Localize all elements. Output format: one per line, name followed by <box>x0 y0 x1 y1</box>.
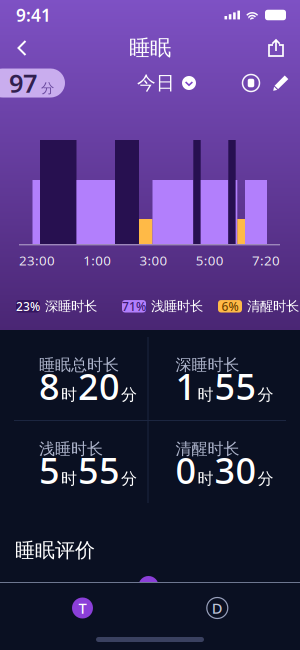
staticText: 时 <box>197 385 213 405</box>
staticText: 5 <box>39 446 60 494</box>
staticText: 1:00 <box>83 251 111 269</box>
button[interactable]: Edit <box>266 68 296 98</box>
staticText: 23:00 <box>19 251 55 269</box>
staticText: 今日 <box>137 71 175 94</box>
staticText: 分 <box>257 385 273 405</box>
button[interactable]: Trend <box>59 593 105 623</box>
button[interactable]: Device <box>236 68 266 98</box>
button[interactable]: Share <box>257 30 295 66</box>
staticText: 时 <box>61 385 77 405</box>
staticText: 30 <box>214 446 256 494</box>
staticText: 清醒时长 <box>175 439 239 459</box>
staticText: 1 <box>175 362 196 410</box>
staticText: 5:00 <box>196 251 224 269</box>
staticText: 时 <box>61 469 77 489</box>
staticText: 0 <box>175 446 196 494</box>
staticText: D <box>212 598 223 618</box>
staticText: 睡眠评价 <box>15 538 95 563</box>
staticText: 分 <box>121 385 137 405</box>
staticText: 深睡时长 <box>45 298 97 314</box>
staticText: 9:41 <box>16 3 51 26</box>
button[interactable]: Detail <box>194 593 240 623</box>
staticText: 分 <box>41 80 54 97</box>
staticText: 20 <box>78 362 120 410</box>
button[interactable]: 今日 <box>129 66 204 99</box>
staticText: 分 <box>121 469 137 489</box>
staticText: 55 <box>78 446 120 494</box>
staticText: 71% <box>122 298 146 314</box>
staticText: 睡眠总时长 <box>39 355 119 375</box>
staticText: 深睡时长 <box>175 355 239 375</box>
staticText: 清醒时长 <box>247 298 299 314</box>
button[interactable]: Back <box>3 30 41 66</box>
staticText: 6% <box>221 298 238 314</box>
staticText: 浅睡时长 <box>39 439 103 459</box>
staticText: 睡眠 <box>129 35 171 61</box>
staticText: 97 <box>9 66 37 100</box>
staticText: T <box>78 598 86 618</box>
staticText: 8 <box>39 362 60 410</box>
staticText: 7:20 <box>252 251 280 269</box>
staticText: 时 <box>197 469 213 489</box>
staticText: 浅睡时长 <box>151 298 203 314</box>
staticText: 55 <box>214 362 256 410</box>
staticText: 23% <box>16 298 40 314</box>
staticText: 分 <box>257 469 273 489</box>
staticText: 3:00 <box>139 251 167 269</box>
